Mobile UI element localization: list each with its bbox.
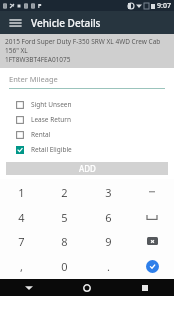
staticText: 4 [18, 210, 25, 225]
staticText: Rental [31, 130, 51, 139]
staticText: 7 [18, 234, 25, 249]
button[interactable]: 7 [0, 229, 43, 253]
button[interactable]: 2 [43, 180, 86, 204]
button[interactable]: 4 [0, 205, 43, 229]
button[interactable]: Dash [130, 180, 174, 204]
button[interactable]: 5 [43, 205, 86, 229]
staticText: 8 [61, 234, 68, 249]
staticText: 3 [105, 185, 112, 200]
button[interactable]: ADD [6, 162, 168, 175]
staticText: 6 [105, 210, 112, 225]
button[interactable]: Rental [0, 127, 174, 142]
button[interactable]: Backspace [130, 229, 174, 253]
button[interactable]: Enter Mileage [9, 74, 165, 89]
button[interactable]: Home [58, 279, 116, 296]
staticText: ADD [79, 163, 96, 174]
button[interactable]: Open navigation menu [6, 14, 24, 32]
button[interactable]: Recent apps [116, 279, 174, 296]
button[interactable]: Space [130, 205, 174, 229]
staticText: 2 [61, 185, 68, 200]
button[interactable]: Done [130, 254, 174, 278]
staticText: . [107, 259, 110, 274]
staticText: Retail Eligible [31, 145, 72, 154]
staticText: Lease Return [31, 115, 71, 124]
button[interactable]: 8 [43, 229, 86, 253]
button[interactable]: , [0, 254, 43, 278]
button[interactable]: 9 [86, 229, 130, 253]
staticText: 0 [61, 259, 68, 274]
staticText: 9:07 [157, 1, 171, 11]
staticText: Sight Unseen [31, 100, 72, 109]
staticText: 9 [105, 234, 112, 249]
button[interactable]: Lease Return [0, 112, 174, 127]
button[interactable]: Sight Unseen [0, 97, 174, 112]
button[interactable]: Back [0, 279, 58, 296]
button[interactable]: 6 [86, 205, 130, 229]
button[interactable]: Retail Eligible [0, 142, 174, 157]
staticText: Enter Mileage [9, 74, 58, 84]
staticText: Vehicle Details [31, 16, 101, 30]
button[interactable]: . [86, 254, 130, 278]
button[interactable]: 0 [43, 254, 86, 278]
staticText: 1FT8W3BT4FEA01075 [5, 55, 71, 64]
button[interactable]: 1 [0, 180, 43, 204]
button[interactable]: 3 [86, 180, 130, 204]
staticText: 5 [61, 210, 68, 225]
staticText: , [20, 259, 23, 274]
staticText: 1 [18, 185, 25, 200]
staticText: 2015 Ford Super Duty F-350 SRW XL 4WD Cr… [5, 37, 169, 55]
